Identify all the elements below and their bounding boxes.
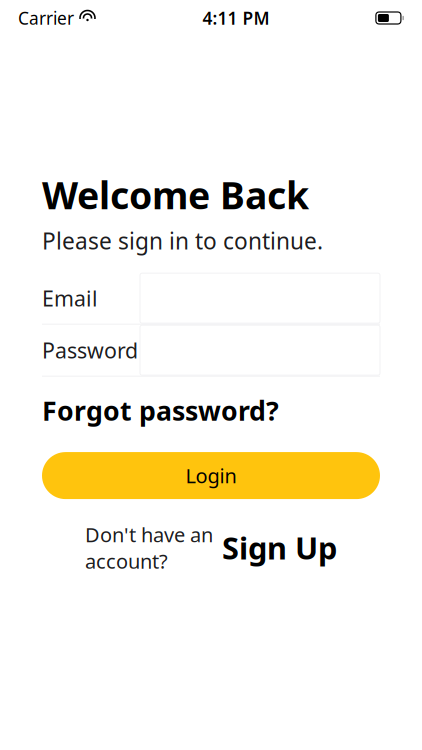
staticText: Forgot password? xyxy=(42,393,279,428)
staticText: Login xyxy=(185,462,236,489)
staticText: Password xyxy=(42,336,138,364)
staticText: Sign Up xyxy=(222,527,337,568)
staticText: Carrier xyxy=(18,6,74,29)
staticText: Email xyxy=(42,284,98,312)
staticText: Welcome Back xyxy=(42,170,309,220)
button[interactable]: Sign Up xyxy=(222,527,337,568)
button[interactable]: Forgot password? xyxy=(42,385,279,436)
staticText: Don't have an account? xyxy=(85,521,213,574)
staticText: 4:11 PM xyxy=(202,6,269,29)
button[interactable]: Login xyxy=(42,452,380,499)
staticText: Please sign in to continue. xyxy=(42,226,323,256)
